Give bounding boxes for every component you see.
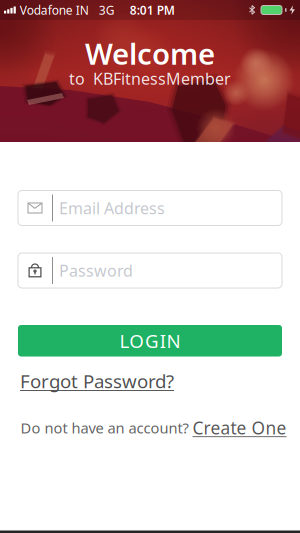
button[interactable]: Create One <box>192 416 286 439</box>
staticText: Email Address <box>59 197 165 219</box>
staticText: Create One <box>192 416 286 439</box>
staticText: Vodafone IN <box>20 2 89 18</box>
button[interactable]: Password <box>18 253 282 288</box>
staticText: LOGIN <box>119 328 181 353</box>
button[interactable]: LOGIN <box>18 325 282 356</box>
staticText: to KBFitnessMember <box>69 68 231 89</box>
staticText: Welcome <box>85 34 215 73</box>
staticText: Do not have an account? <box>20 418 188 438</box>
staticText: Forgot Password? <box>20 368 174 393</box>
staticText: Password <box>59 260 133 281</box>
staticText: 3G <box>99 2 115 18</box>
button[interactable]: Email Address <box>18 190 282 225</box>
button[interactable]: Forgot Password? <box>20 368 174 393</box>
staticText: 8:01 PM <box>130 2 175 18</box>
